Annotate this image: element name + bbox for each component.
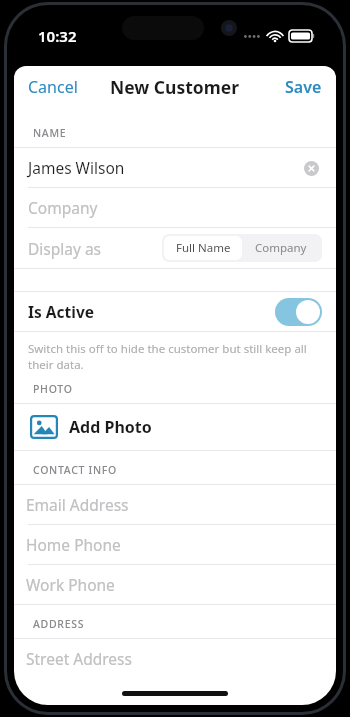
button[interactable]: Company: [14, 188, 336, 227]
button[interactable]: Full Name: [164, 236, 242, 260]
button[interactable]: Save: [275, 70, 336, 104]
button[interactable]: Company: [242, 236, 320, 260]
button[interactable]: Work Phone: [14, 565, 336, 604]
staticText: Add Photo: [69, 416, 152, 438]
other: Is Active toggle: [275, 298, 322, 326]
button[interactable]: Home Phone: [14, 525, 336, 564]
staticText: Work Phone: [26, 574, 322, 595]
button[interactable]: Street Address: [14, 639, 336, 678]
button[interactable]: Clear text: [300, 157, 322, 179]
staticText: Company: [255, 240, 307, 256]
staticText: James Wilson: [28, 157, 300, 178]
staticText: CONTACT INFO: [33, 463, 118, 477]
button[interactable]: Add Photo: [14, 404, 336, 450]
button[interactable]: Cancel: [14, 70, 88, 104]
button[interactable]: Email Address: [14, 485, 336, 524]
staticText: Switch this off to hide the customer but…: [28, 341, 307, 372]
staticText: Full Name: [176, 240, 231, 256]
button[interactable]: James Wilson: [14, 148, 336, 187]
staticText: Street Address: [26, 648, 322, 669]
staticText: ADDRESS: [33, 617, 85, 631]
staticText: Is Active: [28, 301, 95, 322]
staticText: PHOTO: [33, 382, 73, 396]
staticText: Display as: [28, 238, 102, 259]
button[interactable]: Is Active: [14, 292, 336, 331]
staticText: 10:32: [38, 26, 77, 46]
staticText: Email Address: [26, 494, 322, 515]
staticText: NAME: [33, 126, 67, 140]
staticText: New Customer: [110, 75, 240, 99]
staticText: Home Phone: [26, 534, 322, 555]
staticText: Company: [28, 197, 322, 218]
